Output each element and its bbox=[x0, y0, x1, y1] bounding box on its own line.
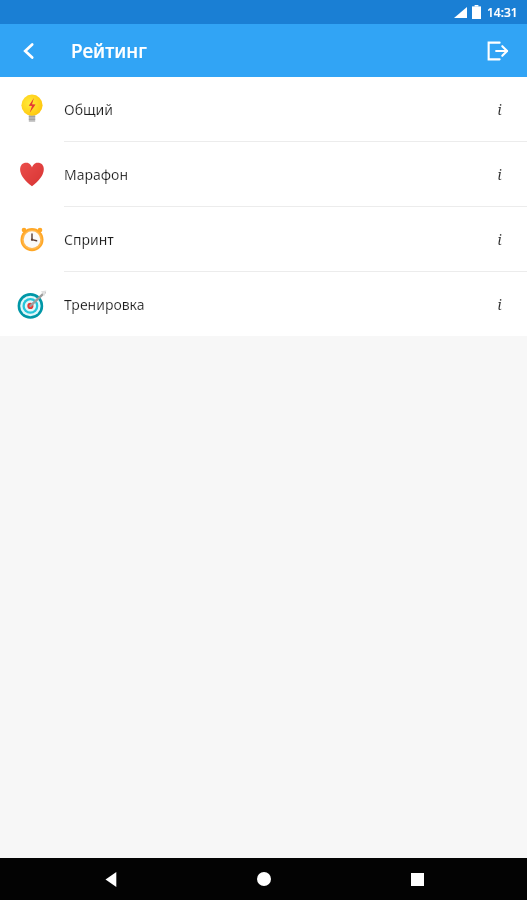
staticText: i bbox=[497, 229, 502, 249]
staticText: Тренировка bbox=[64, 295, 145, 314]
button[interactable]: Back bbox=[90, 858, 132, 900]
staticText: Марафон bbox=[64, 165, 129, 184]
button[interactable]: Спринт bbox=[0, 207, 527, 271]
staticText: i bbox=[497, 294, 502, 314]
staticText: Спринт bbox=[64, 230, 114, 249]
button[interactable]: Общий bbox=[0, 77, 527, 141]
button[interactable]: Info bbox=[475, 215, 523, 263]
staticText: Рейтинг bbox=[71, 38, 147, 64]
button[interactable]: Log out bbox=[475, 29, 519, 73]
button[interactable]: Марафон bbox=[0, 142, 527, 206]
button[interactable]: Back bbox=[7, 29, 51, 73]
button[interactable]: Тренировка bbox=[0, 272, 527, 336]
button[interactable]: Info bbox=[475, 85, 523, 133]
button[interactable]: Info bbox=[475, 280, 523, 328]
button[interactable]: Info bbox=[475, 150, 523, 198]
button[interactable]: Home bbox=[243, 858, 285, 900]
staticText: i bbox=[497, 164, 502, 184]
staticText: Общий bbox=[64, 100, 113, 119]
staticText: i bbox=[497, 99, 502, 119]
staticText: 14:31 bbox=[487, 4, 518, 20]
button[interactable]: Recent apps bbox=[396, 858, 438, 900]
